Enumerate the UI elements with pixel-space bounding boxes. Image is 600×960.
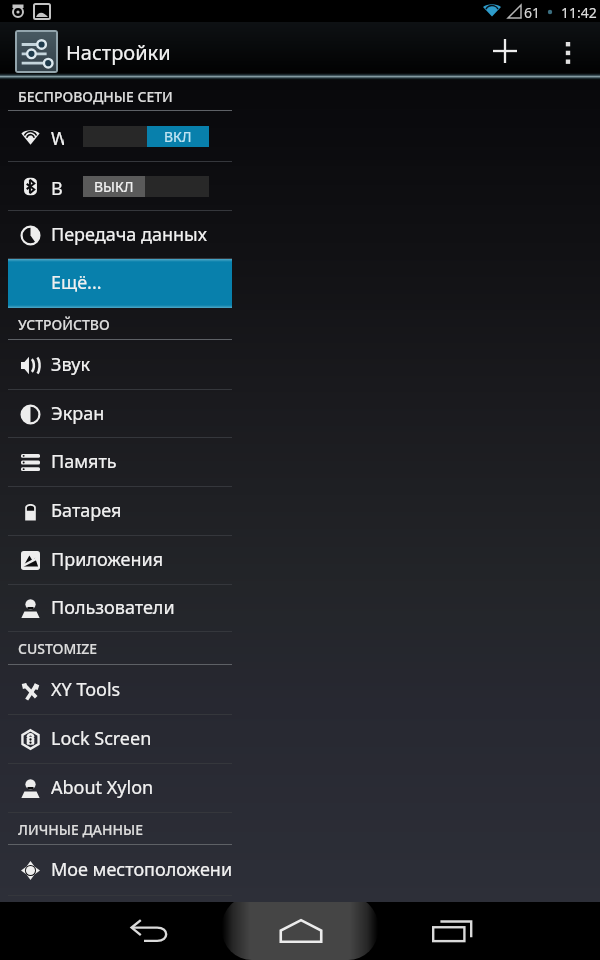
button[interactable]: Приложения	[8, 536, 232, 585]
staticText: ВКЛ	[164, 127, 192, 146]
staticText: XY Tools	[51, 677, 121, 702]
button[interactable]: Wi-Fi	[0, 111, 240, 162]
button[interactable]: Пользователи	[8, 585, 232, 632]
button[interactable]: XY Tools	[8, 665, 232, 715]
staticText: Пользователи	[51, 595, 175, 620]
staticText: Батарея	[51, 498, 122, 523]
staticText: Wi-Fi	[51, 126, 64, 148]
staticText: 61	[524, 3, 541, 22]
staticText: Lock Screen	[51, 726, 152, 751]
staticText: БЕСПРОВОДНЫЕ СЕТИ	[18, 87, 173, 106]
staticText: Экран	[51, 401, 105, 426]
button[interactable]: Мое местоположение	[8, 845, 232, 896]
staticText: CUSTOMIZE	[18, 639, 98, 658]
button[interactable]: Bluetooth	[0, 162, 240, 211]
staticText: 11:42	[561, 3, 597, 22]
staticText: Ещё...	[51, 270, 102, 295]
button[interactable]: Recent apps	[421, 902, 483, 960]
button[interactable]: Передача данных	[8, 211, 232, 259]
staticText: Память	[51, 449, 117, 474]
staticText: About Xylon	[51, 775, 154, 800]
button[interactable]: Home	[270, 902, 332, 960]
staticText: Bluetooth	[51, 176, 64, 198]
staticText: ВЫКЛ	[94, 177, 134, 196]
staticText: Звук	[51, 352, 91, 377]
button[interactable]: About Xylon	[8, 764, 232, 813]
button[interactable]: Ещё...	[8, 259, 232, 308]
staticText: Настройки	[66, 39, 171, 66]
staticText: ЛИЧНЫЕ ДАННЫЕ	[18, 820, 143, 839]
staticText: УСТРОЙСТВО	[18, 315, 110, 334]
button[interactable]: Back	[119, 902, 181, 960]
staticText: Мое местоположение	[51, 857, 232, 882]
button[interactable]: Lock Screen	[8, 715, 232, 764]
button[interactable]: Батарея	[8, 487, 232, 536]
button[interactable]: Settings app icon	[17, 32, 56, 71]
button[interactable]: Add	[479, 22, 531, 80]
staticText: Приложения	[51, 547, 164, 572]
button[interactable]: Память	[8, 438, 232, 487]
staticText: Передача данных	[51, 222, 207, 247]
button[interactable]: Звук	[8, 340, 232, 390]
button[interactable]: Экран	[8, 390, 232, 438]
button[interactable]: More options	[544, 22, 592, 80]
